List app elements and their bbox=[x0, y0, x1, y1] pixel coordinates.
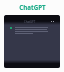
button[interactable]: App bar bbox=[4, 15, 60, 25]
button[interactable]: Message input bbox=[4, 60, 60, 68]
staticText: ChatGPT bbox=[24, 20, 36, 24]
staticText: ChatGPT bbox=[19, 3, 46, 11]
